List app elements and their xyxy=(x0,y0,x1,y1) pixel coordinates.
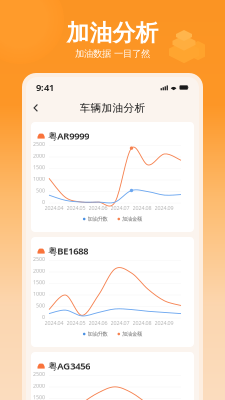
staticText: 2500 xyxy=(33,370,45,378)
staticText: 9:41 xyxy=(36,81,54,94)
staticText: 2024.06 xyxy=(88,319,107,327)
staticText: 2024.08 xyxy=(132,319,151,327)
staticText: 2500 xyxy=(33,255,45,263)
staticText: 2024.05 xyxy=(66,204,85,212)
staticText: 加油数据 一目了然 xyxy=(75,48,150,59)
staticText: 加油升数 xyxy=(87,216,107,222)
staticText: 2000 xyxy=(33,152,45,159)
button[interactable]: 粤AG3456 xyxy=(31,352,194,400)
staticText: 2024.09 xyxy=(154,204,173,212)
staticText: 2500 xyxy=(33,140,45,148)
staticText: 粤AR9999 xyxy=(48,130,89,142)
staticText: 加油金额 xyxy=(122,331,142,337)
staticText: 500 xyxy=(36,302,45,309)
staticText: 2024.09 xyxy=(154,319,173,327)
staticText: 加油分析 xyxy=(66,19,158,47)
staticText: 粤AG3456 xyxy=(48,360,90,372)
staticText: 2024.05 xyxy=(66,319,85,327)
staticText: 500 xyxy=(36,187,45,194)
staticText: 1000 xyxy=(33,290,45,297)
staticText: 车辆加油分析 xyxy=(79,101,145,114)
staticText: 粤BE1688 xyxy=(48,245,88,257)
staticText: 1000 xyxy=(33,175,45,182)
staticText: 2024.04 xyxy=(44,204,63,212)
staticText: 2024.07 xyxy=(110,319,129,327)
staticText: 加油金额 xyxy=(122,216,142,222)
button[interactable]: 粤BE1688 xyxy=(31,237,194,347)
staticText: 1500 xyxy=(33,164,45,171)
staticText: 2000 xyxy=(33,382,45,389)
staticText: 2000 xyxy=(33,267,45,274)
staticText: 0 xyxy=(42,313,45,321)
staticText: 2024.07 xyxy=(110,204,129,212)
staticText: 2024.06 xyxy=(88,204,107,212)
staticText: 0 xyxy=(42,198,45,206)
staticText: 1500 xyxy=(33,394,45,400)
staticText: 2024.04 xyxy=(44,319,63,327)
staticText: 2024.08 xyxy=(132,204,151,212)
staticText: 加油升数 xyxy=(87,331,107,337)
staticText: 1500 xyxy=(33,279,45,286)
button[interactable]: Back xyxy=(29,99,43,116)
button[interactable]: 粤AR9999 xyxy=(31,122,194,232)
